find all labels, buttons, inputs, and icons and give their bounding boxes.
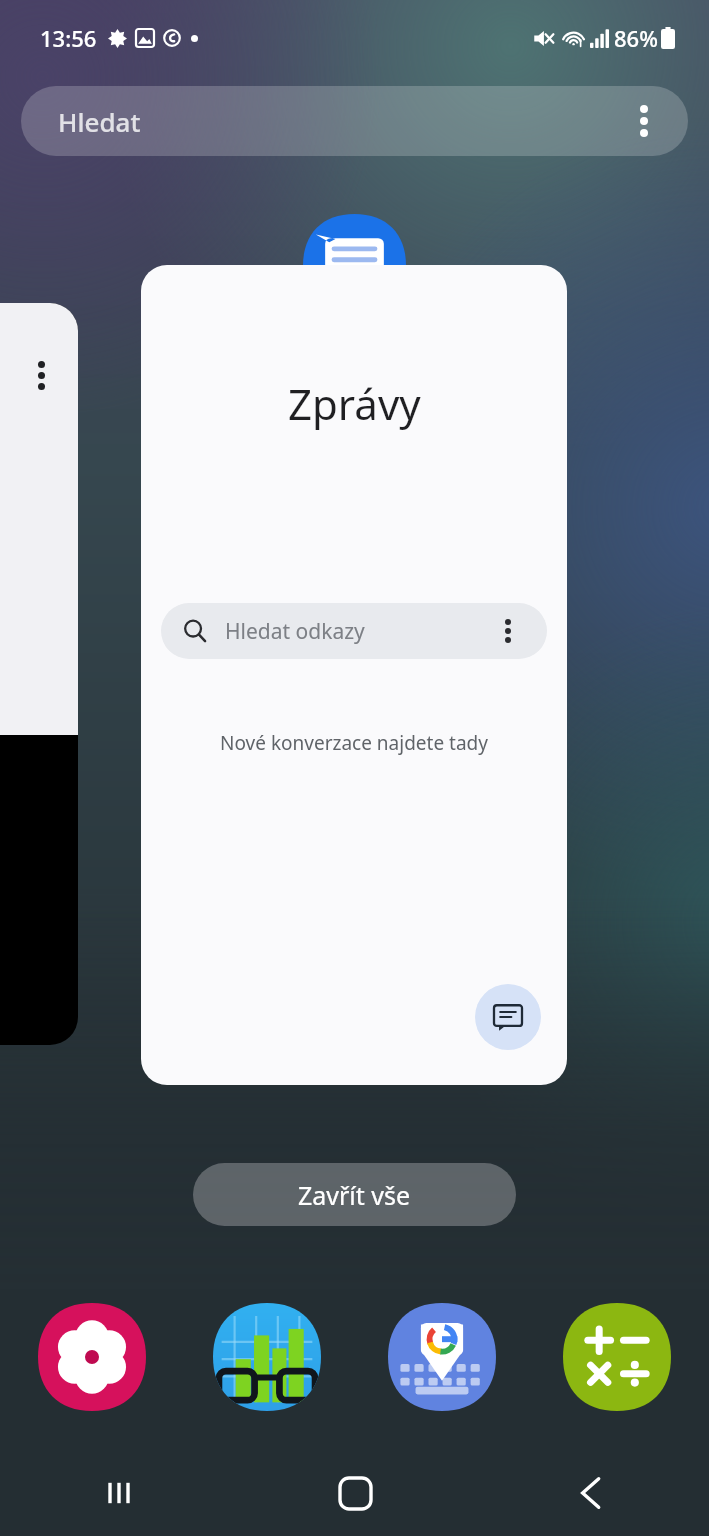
button[interactable]: Hledat odkazy xyxy=(161,603,547,659)
staticText: 13:56 xyxy=(40,23,97,53)
staticText: Nové konverzace najdete tady xyxy=(220,730,488,756)
button[interactable]: Recents xyxy=(0,1450,237,1536)
button[interactable]: More options xyxy=(493,616,523,646)
button[interactable]: Zprávy xyxy=(141,265,567,1085)
button[interactable]: Home xyxy=(237,1450,473,1536)
staticText: Hledat xyxy=(58,104,141,139)
button[interactable]: Data usage xyxy=(213,1303,321,1411)
button[interactable]: a xyxy=(0,303,78,1045)
staticText: Zavřít vše xyxy=(298,1178,411,1212)
button[interactable]: Hledat xyxy=(21,86,688,156)
staticText: Hledat odkazy xyxy=(225,617,365,646)
staticText: Zprávy xyxy=(288,375,421,432)
button[interactable]: Gboard xyxy=(388,1303,496,1411)
staticText: 86% xyxy=(614,23,658,53)
button[interactable]: More options xyxy=(624,101,664,141)
button[interactable]: Calculator xyxy=(563,1303,671,1411)
button[interactable]: Zavřít vše xyxy=(193,1163,516,1226)
button[interactable]: Gallery xyxy=(38,1303,146,1411)
button[interactable]: Start chat xyxy=(475,984,541,1050)
button[interactable]: Zprávy app icon xyxy=(303,214,406,317)
button[interactable]: Back xyxy=(473,1450,709,1536)
